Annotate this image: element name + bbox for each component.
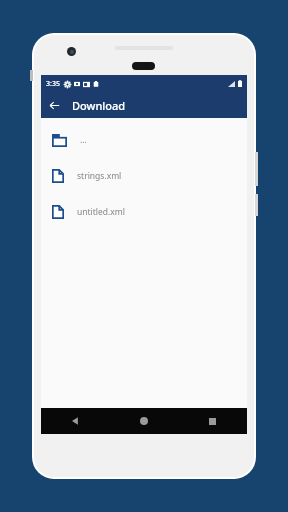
button[interactable]: Navigate up: [44, 95, 64, 115]
button[interactable]: Home: [109, 408, 178, 434]
staticText: ...: [80, 134, 87, 146]
staticText: strings.xml: [77, 170, 122, 182]
button[interactable]: strings.xml: [41, 158, 247, 194]
button[interactable]: Recent apps: [178, 408, 247, 434]
button[interactable]: ...: [41, 122, 247, 158]
staticText: 3:35: [46, 79, 60, 89]
staticText: Download: [72, 98, 126, 113]
button[interactable]: Back: [41, 408, 109, 434]
button[interactable]: untitled.xml: [41, 194, 247, 230]
staticText: untitled.xml: [77, 206, 125, 218]
